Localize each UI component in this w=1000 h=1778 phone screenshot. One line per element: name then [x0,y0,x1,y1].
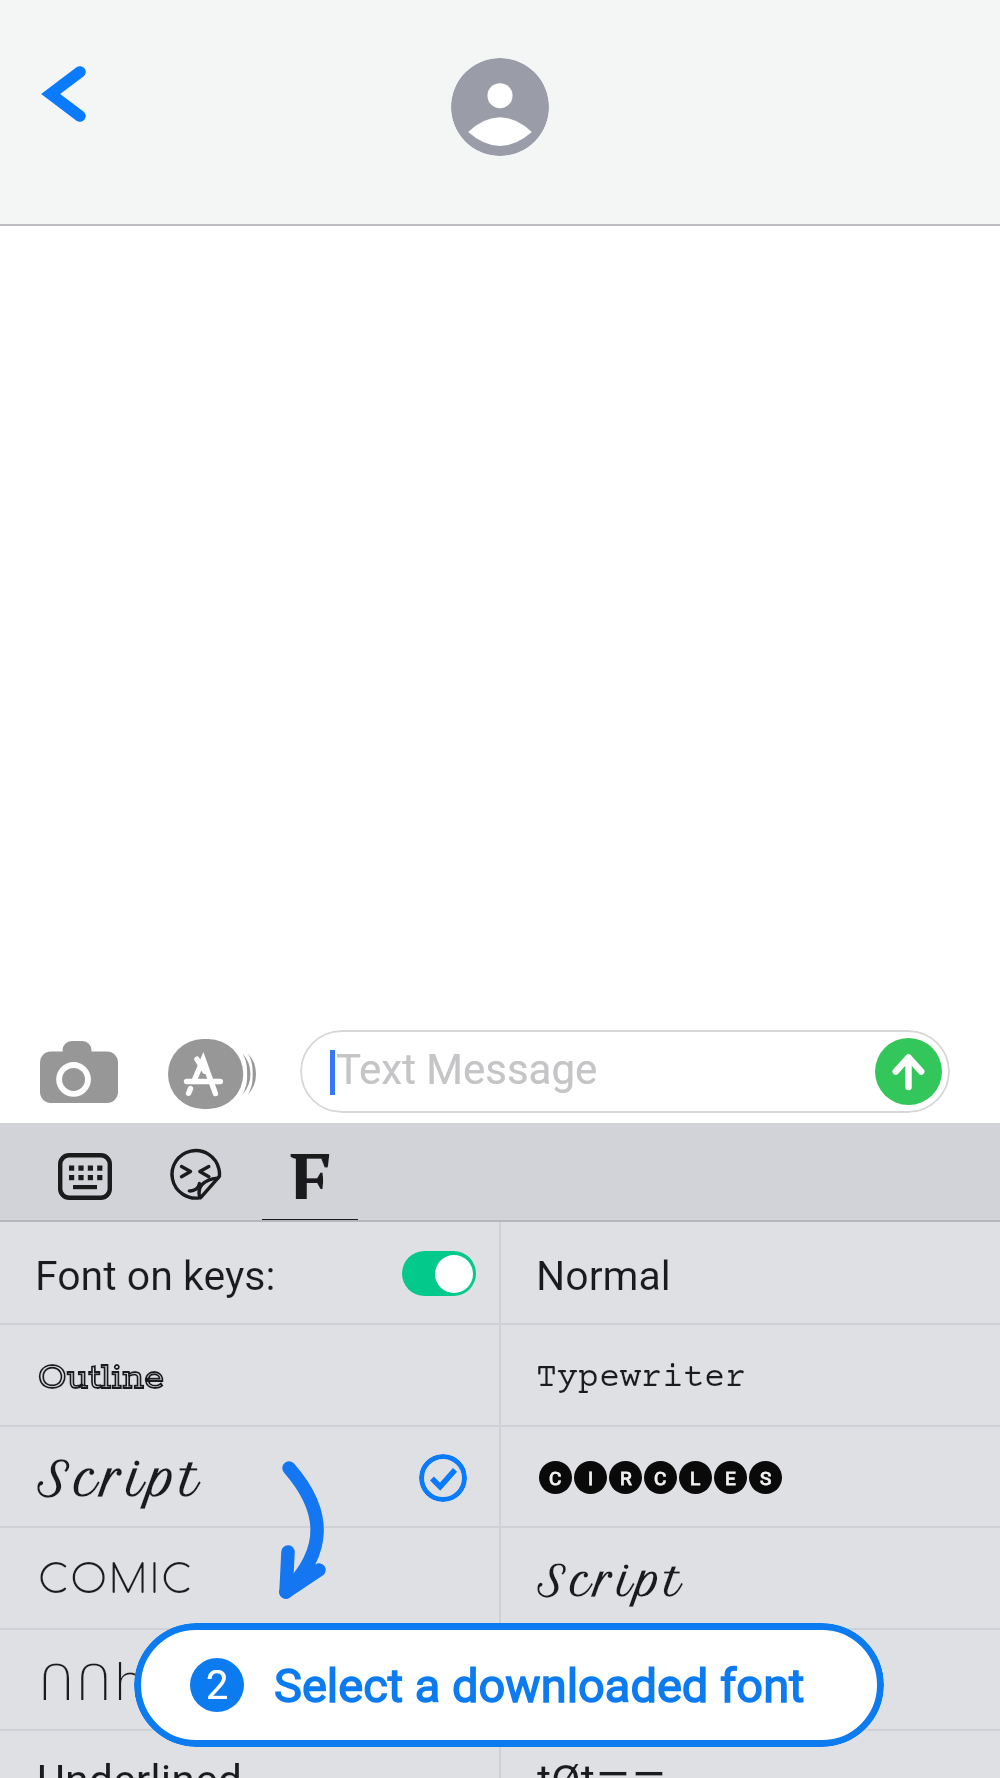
button[interactable]: Send [875,1038,942,1105]
button[interactable]: Script [0,1425,499,1526]
staticText: L [690,1467,701,1489]
button[interactable]: Contact avatar [451,58,549,156]
button[interactable]: Text Message [300,1030,950,1113]
button[interactable]: Typewriter [499,1323,1000,1424]
staticText: R [620,1467,632,1489]
staticText: Typewriter [536,1359,746,1398]
button[interactable]: Back [26,56,102,132]
staticText: ՈՈհ [38,1654,146,1712]
staticText: ŧØŧ≡≡ [537,1755,667,1778]
button[interactable]: Camera [40,1041,118,1103]
button[interactable]: COMIC [0,1526,499,1627]
button[interactable]: Outline [0,1323,499,1424]
button[interactable]: Stickers [172,1150,226,1204]
staticText: COMIC [38,1558,194,1603]
staticText: 2 [206,1662,229,1709]
staticText: I [588,1467,594,1489]
staticText: Text Message [336,1045,598,1094]
staticText: C [654,1467,667,1489]
button[interactable]: Font on keys: [0,1222,499,1323]
button[interactable]: Underlined [0,1729,499,1778]
button[interactable]: 2 [134,1623,884,1747]
button[interactable]: Fonts [262,1129,358,1199]
staticText: Font on keys: [35,1252,276,1300]
staticText: Underlined [37,1755,242,1778]
staticText: Script [538,1556,687,1606]
staticText: E [725,1467,736,1489]
button[interactable]: App Store [168,1039,256,1109]
staticText: Select a downloaded font [274,1658,805,1713]
button[interactable]: Normal [499,1222,1000,1323]
button[interactable]: Keyboard [58,1153,112,1200]
button[interactable]: Selected [419,1454,467,1502]
staticText: C [549,1467,562,1489]
button[interactable]: Script [499,1526,1000,1627]
staticText: Outline [38,1355,165,1400]
button[interactable]: ՈՈհ [0,1628,499,1729]
button[interactable]: ŧØŧ≡≡ [499,1729,1000,1778]
staticText: S [760,1467,772,1489]
button[interactable]: Font on keys toggle [402,1251,476,1296]
staticText: Script [38,1451,205,1507]
staticText: F [289,1129,332,1199]
staticText: Normal [536,1252,671,1300]
